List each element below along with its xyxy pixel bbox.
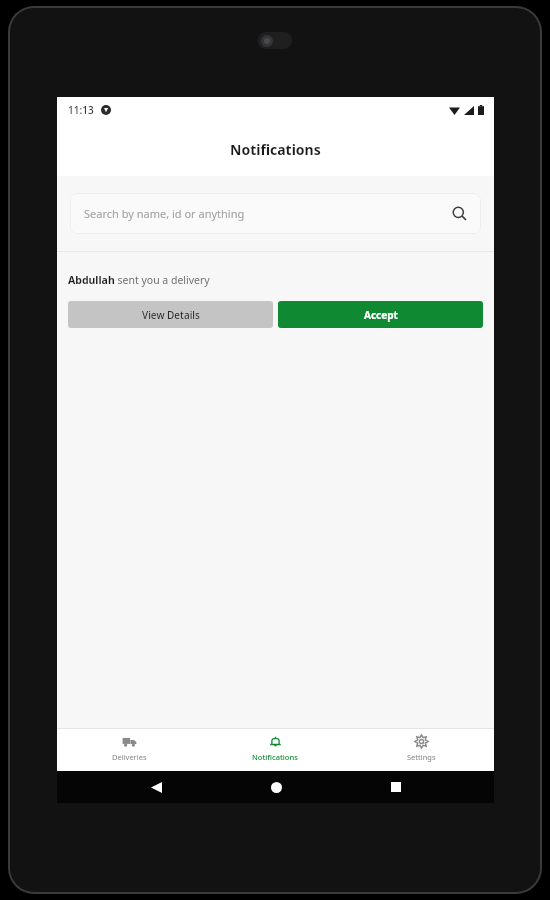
staticText: Notifications bbox=[252, 752, 298, 762]
staticText: Notifications bbox=[230, 140, 321, 159]
button[interactable]: Home bbox=[216, 771, 336, 803]
staticText: 11:13 bbox=[68, 103, 94, 117]
button[interactable]: Notifications bbox=[202, 729, 348, 771]
button[interactable]: Back bbox=[96, 771, 216, 803]
staticText: View Details bbox=[142, 308, 200, 322]
staticText: Search by name, id or anything bbox=[84, 206, 452, 221]
button[interactable]: View Details bbox=[68, 301, 273, 328]
button[interactable]: Deliveries bbox=[57, 729, 202, 771]
staticText: Deliveries bbox=[112, 752, 147, 762]
button[interactable]: Settings bbox=[348, 729, 494, 771]
button[interactable]: Recent apps bbox=[336, 771, 456, 803]
button[interactable]: Search by name, id or anything bbox=[70, 193, 481, 234]
staticText: Settings bbox=[407, 752, 436, 762]
staticText: Abdullah sent you a delivery bbox=[68, 273, 210, 287]
staticText: Accept bbox=[364, 308, 398, 322]
button[interactable]: Accept bbox=[278, 301, 483, 328]
